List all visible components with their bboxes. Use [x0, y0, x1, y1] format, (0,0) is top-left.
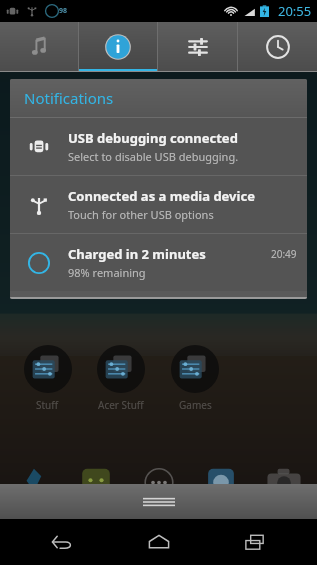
button[interactable]: Games: [165, 345, 225, 412]
button[interactable]: Back: [27, 519, 97, 565]
staticText: USB debugging connected: [68, 129, 238, 147]
button[interactable]: Stuff: [18, 345, 77, 412]
button[interactable]: Home: [124, 519, 194, 565]
button[interactable]: USB debugging connected: [10, 118, 307, 175]
button[interactable]: Info: [79, 22, 157, 72]
staticText: Acer Stuff: [98, 398, 144, 412]
button[interactable]: Close notifications: [0, 484, 317, 519]
button[interactable]: App: [261, 455, 307, 501]
button[interactable]: Charged in 2 minutes: [10, 234, 307, 291]
staticText: 20:49: [271, 247, 297, 261]
staticText: Select to disable USB debugging.: [68, 149, 239, 164]
button[interactable]: App: [73, 455, 119, 501]
button[interactable]: App: [198, 455, 244, 501]
staticText: Notifications: [24, 88, 114, 108]
staticText: Charged in 2 minutes: [68, 245, 206, 263]
button[interactable]: Recent apps: [220, 519, 290, 565]
button[interactable]: Connected as a media device: [10, 176, 307, 233]
button[interactable]: Equalizer: [158, 22, 237, 72]
staticText: Games: [179, 398, 212, 412]
staticText: Stuff: [36, 398, 59, 412]
staticText: Connected as a media device: [68, 187, 255, 205]
staticText: Touch for other USB options: [68, 207, 214, 222]
staticText: 98: [59, 6, 68, 16]
staticText: 20:55: [278, 2, 312, 20]
button[interactable]: Clock: [238, 22, 317, 72]
button[interactable]: Acer Stuff: [91, 345, 151, 412]
staticText: 98% remaining: [68, 265, 146, 280]
button[interactable]: Music: [0, 22, 78, 72]
button[interactable]: App: [10, 455, 56, 501]
button[interactable]: App: [136, 455, 182, 501]
